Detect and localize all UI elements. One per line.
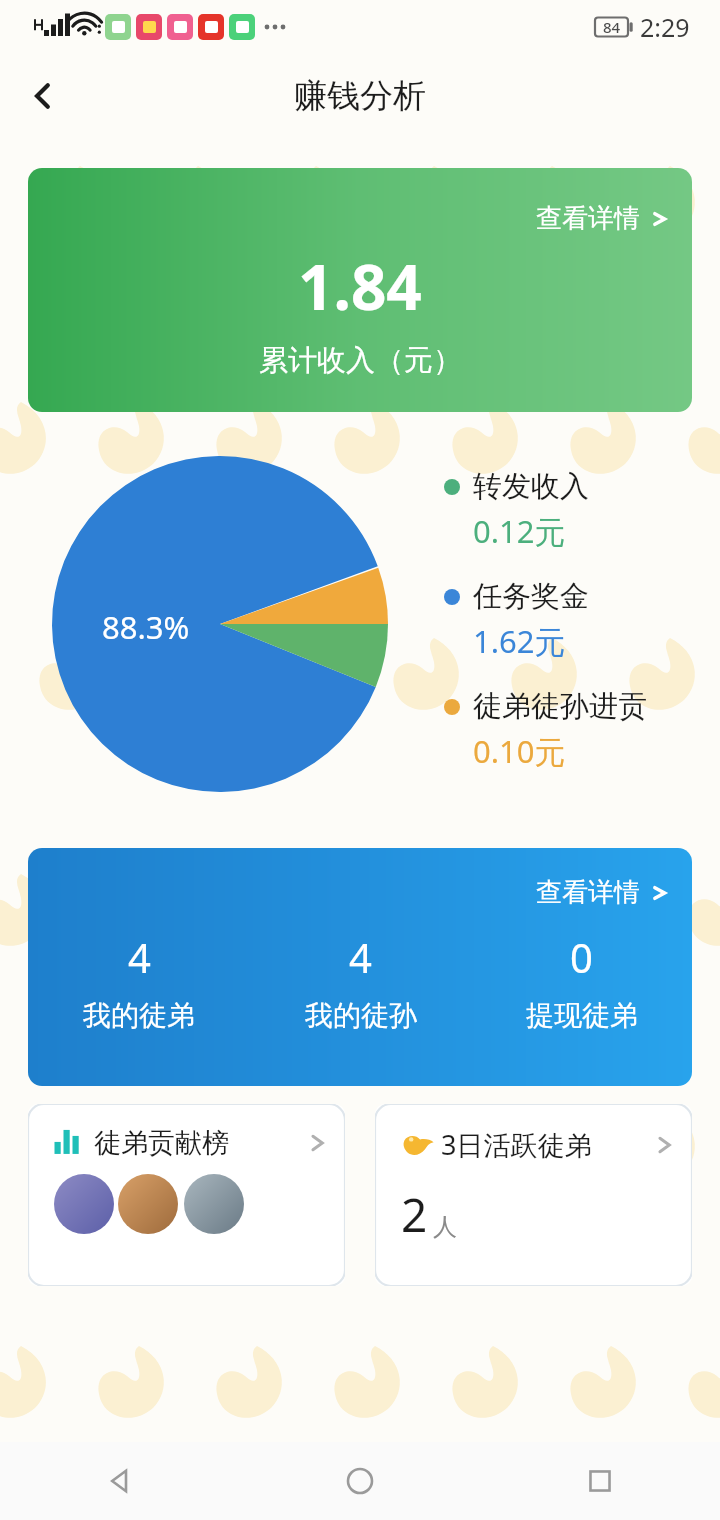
button[interactable]: Home [240,1442,480,1520]
staticText: 人 [433,1212,457,1242]
staticText: 我的徒孙 [305,998,417,1033]
button[interactable]: Recent apps [480,1442,720,1520]
staticText: 任务奖金 [473,578,589,615]
staticText: 提现徒弟 [526,998,638,1033]
staticText: 84 [603,17,621,37]
staticText: 我的徒弟 [83,998,195,1033]
staticText: 4 [349,930,372,984]
button[interactable]: 查看详情 [28,848,692,1086]
staticText: 转发收入 [473,468,589,505]
staticText: 徒弟徒孙进贡 [473,688,647,725]
staticText: 查看详情 [536,876,640,909]
staticText: 3日活跃徒弟 [441,1126,592,1163]
staticText: 2:29 [640,10,690,44]
staticText: 0 [570,930,593,984]
button[interactable]: 4 [250,930,471,1033]
staticText: 2 [401,1183,428,1246]
staticText: 4 [128,930,151,984]
button[interactable]: 查看详情 [536,202,668,235]
staticText: 徒弟贡献榜 [94,1126,229,1160]
staticText: 累计收入（元） [259,342,462,379]
staticText: 查看详情 [536,202,640,235]
button[interactable]: 查看详情 [536,876,668,909]
button[interactable]: 3日活跃徒弟 [375,1104,692,1286]
staticText: 赚钱分析 [294,75,426,117]
button[interactable]: 查看详情 [28,168,692,412]
staticText: 1.62元 [473,620,566,662]
staticText: 88.3% [102,606,190,648]
button[interactable]: Back [0,1442,240,1520]
button[interactable]: 4 [28,930,250,1033]
button[interactable]: 0 [471,930,692,1033]
button[interactable]: 徒弟贡献榜 [28,1104,345,1286]
staticText: 1.84 [298,244,422,328]
staticText: 0.10元 [473,730,566,772]
staticText: 0.12元 [473,510,566,552]
button[interactable]: Back [14,67,72,125]
